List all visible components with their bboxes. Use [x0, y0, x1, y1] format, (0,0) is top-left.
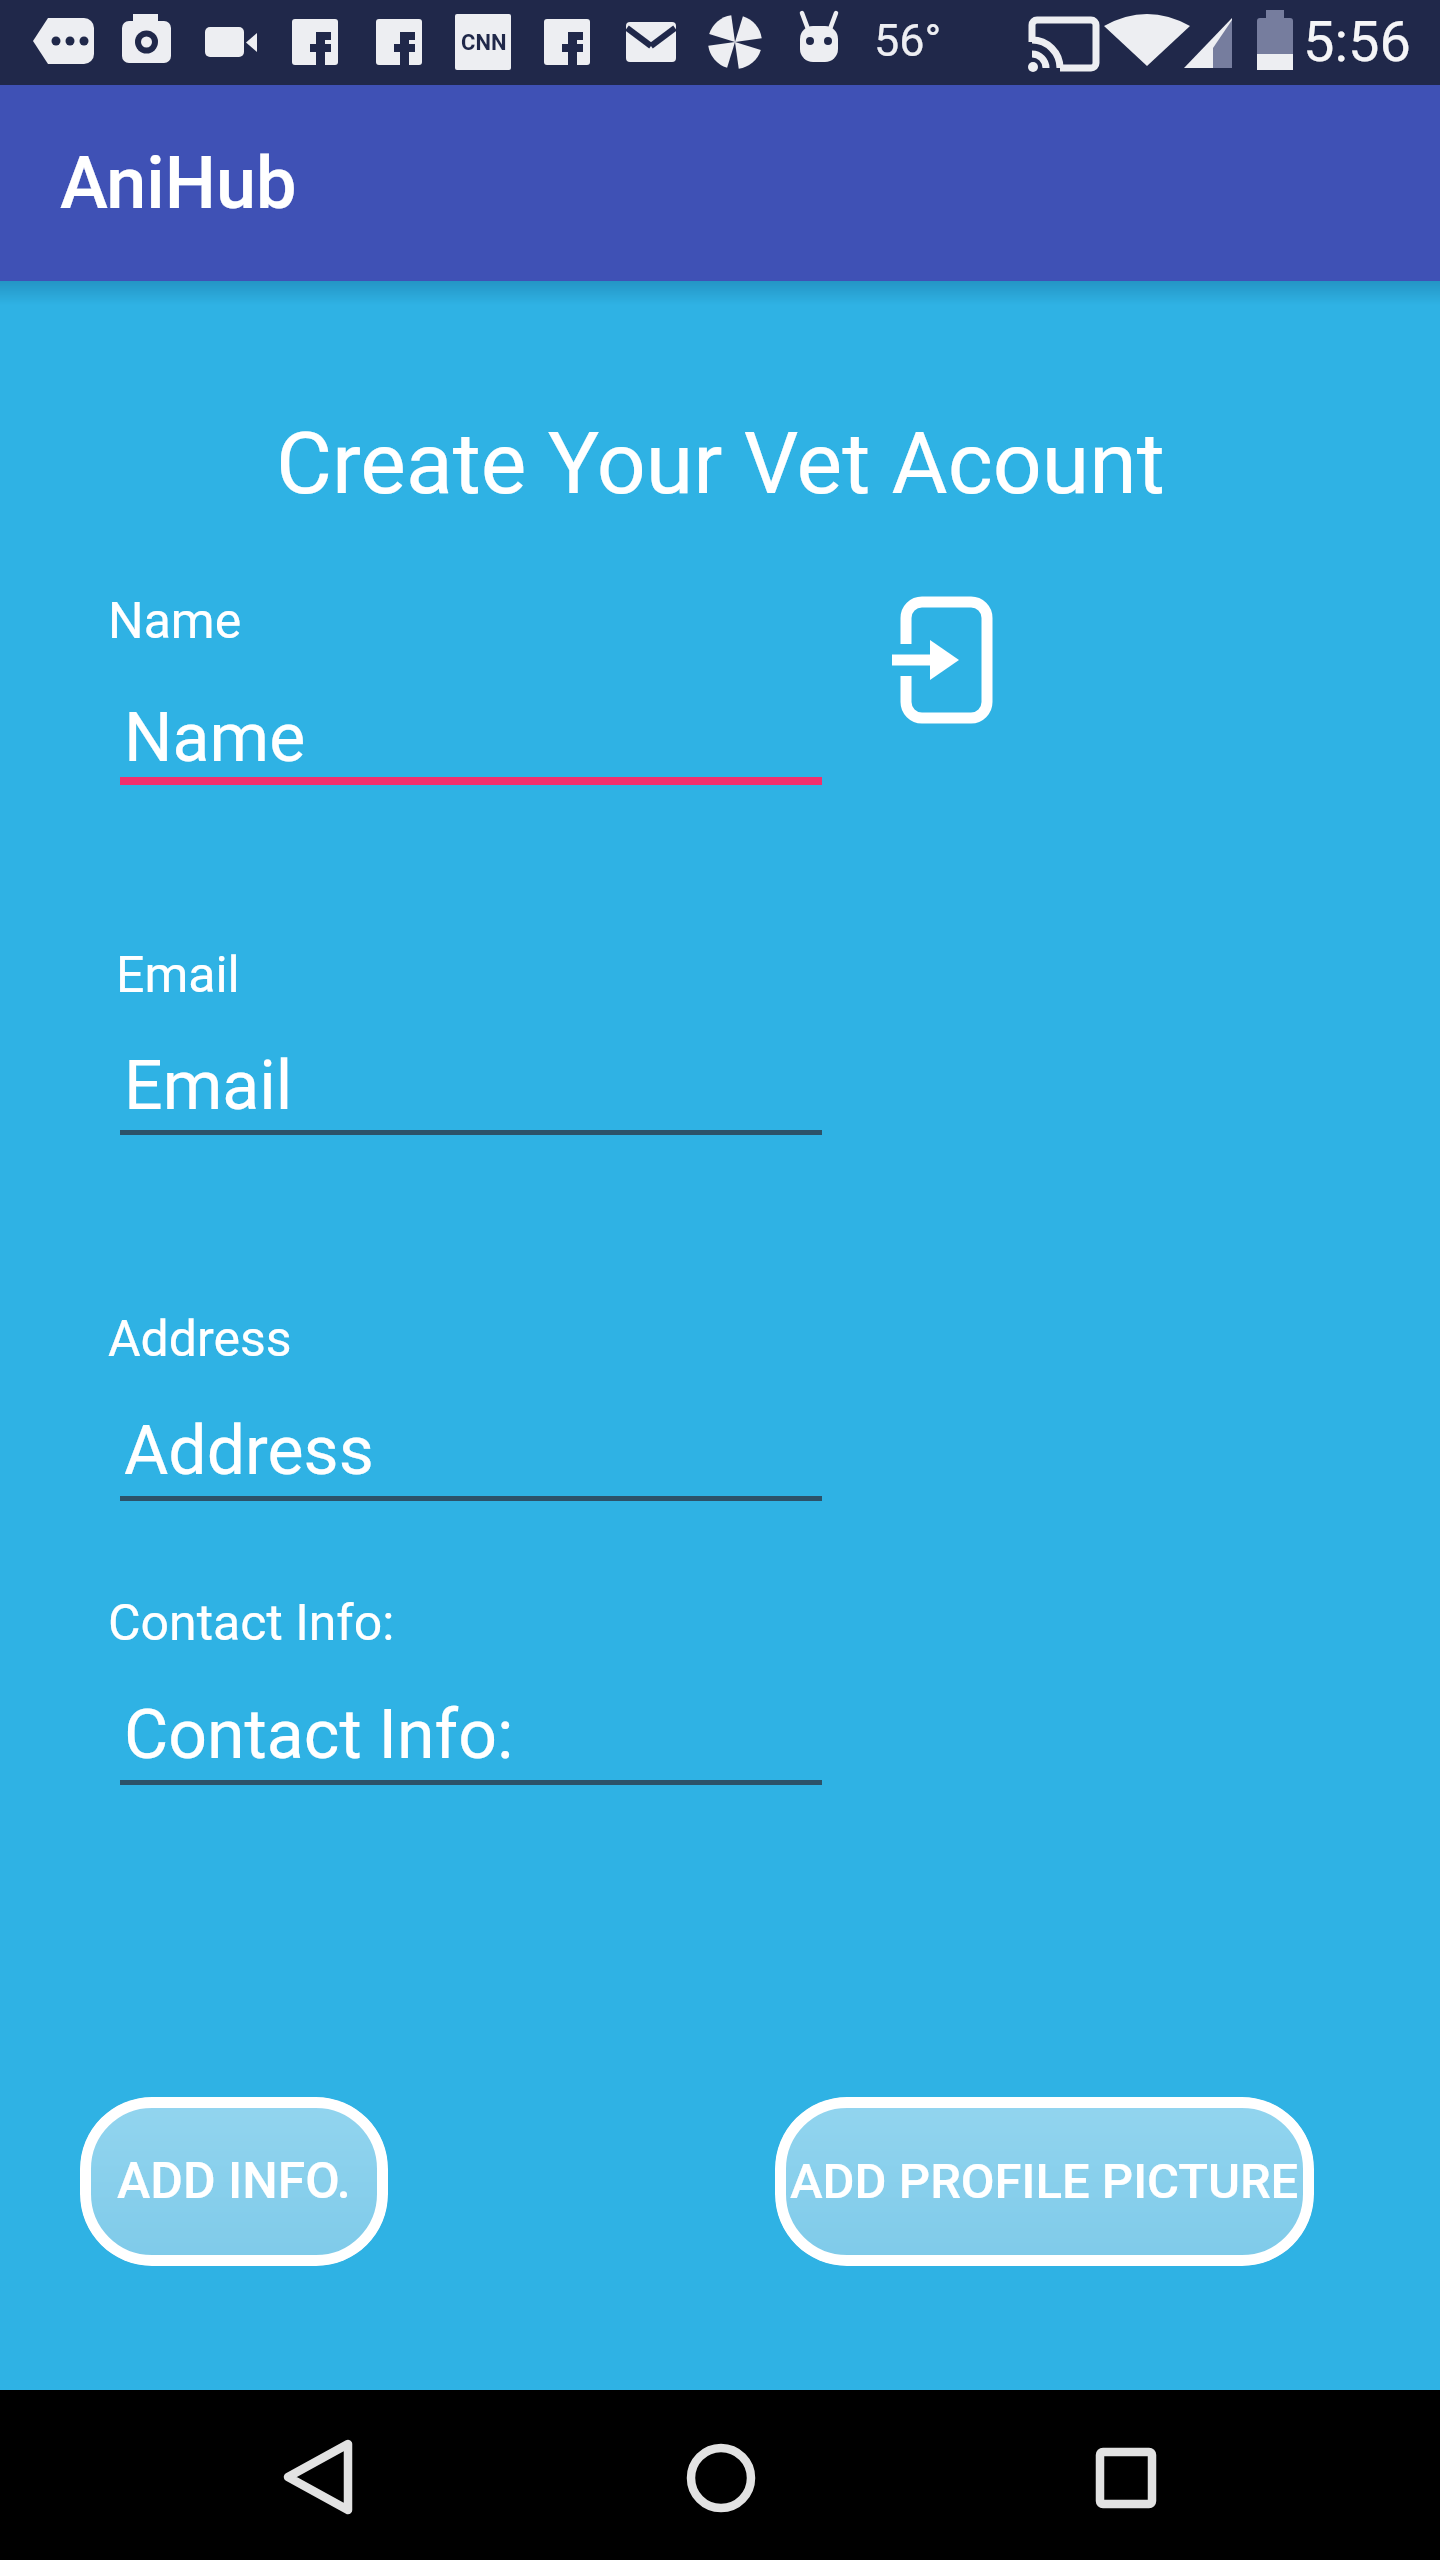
staticText: Email [116, 946, 240, 1005]
staticText: CNN [461, 30, 507, 56]
staticText: Name [124, 698, 306, 778]
staticText: Address [124, 1411, 374, 1491]
staticText: Create Your Vet Acount [276, 413, 1165, 514]
button[interactable] [266, 2423, 368, 2531]
button[interactable]: Name [118, 695, 824, 790]
button[interactable] [880, 596, 996, 726]
staticText: AniHub [60, 141, 297, 225]
staticText: Contact Info: [108, 1594, 395, 1653]
button[interactable] [1074, 2426, 1178, 2530]
staticText: Name [108, 592, 242, 651]
staticText: ADD INFO. [117, 2152, 351, 2211]
button[interactable]: Contact Info: [118, 1692, 824, 1787]
staticText: Contact Info: [124, 1695, 514, 1775]
button[interactable]: ADD INFO. [80, 2097, 388, 2266]
staticText: 56° [874, 14, 942, 67]
staticText: Email [124, 1046, 293, 1126]
button[interactable]: ADD PROFILE PICTURE [775, 2097, 1314, 2266]
staticText: Address [108, 1310, 292, 1369]
staticText: 5:56 [1303, 9, 1411, 75]
button[interactable] [671, 2428, 771, 2528]
staticText: ADD PROFILE PICTURE [790, 2153, 1299, 2210]
button[interactable]: Email [118, 1043, 824, 1138]
button[interactable]: Address [118, 1408, 824, 1503]
